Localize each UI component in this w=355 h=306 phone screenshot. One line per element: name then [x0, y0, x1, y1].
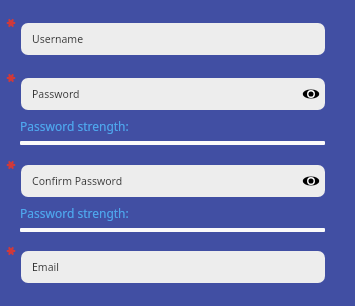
button[interactable]: Show password [302, 87, 320, 101]
staticText: Email [32, 260, 59, 274]
staticText: Username [32, 32, 84, 46]
staticText: Password strength: [20, 118, 129, 134]
button[interactable]: Confirm Password [21, 165, 325, 197]
staticText: Password [32, 87, 80, 101]
button[interactable]: Password [21, 78, 325, 110]
button[interactable]: Show password [302, 174, 320, 188]
button[interactable]: Username [21, 23, 325, 55]
button[interactable]: Email [21, 251, 325, 283]
staticText: Password strength: [20, 205, 129, 221]
staticText: Confirm Password [32, 174, 123, 188]
